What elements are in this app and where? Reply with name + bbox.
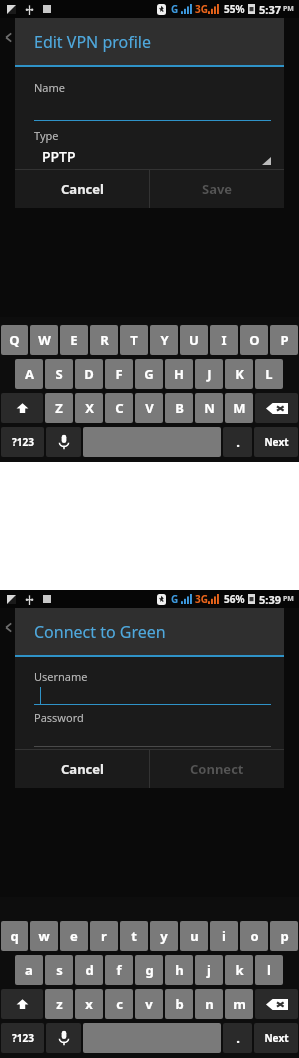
button[interactable]: Back	[1, 620, 16, 635]
button[interactable]: Voice input	[46, 1023, 81, 1053]
button[interactable]: u	[180, 921, 208, 951]
button[interactable]: L	[255, 359, 283, 389]
button[interactable]: v	[135, 989, 163, 1019]
button[interactable]: Save	[150, 170, 284, 208]
button[interactable]: l	[255, 955, 283, 985]
button[interactable]: d	[75, 955, 103, 985]
staticText: PPTP	[42, 147, 76, 166]
staticText: X	[85, 399, 94, 417]
button[interactable]: Next	[254, 427, 298, 457]
staticText: 5:37	[259, 2, 281, 17]
staticText: Next	[264, 435, 289, 449]
button[interactable]: w	[30, 921, 58, 951]
button[interactable]: W	[30, 325, 58, 355]
button[interactable]: A	[15, 359, 43, 389]
staticText: Z	[55, 399, 63, 417]
button[interactable]: Back	[1, 30, 16, 45]
button[interactable]: n	[195, 989, 223, 1019]
button[interactable]: r	[90, 921, 118, 951]
staticText: i	[222, 927, 226, 945]
button[interactable]: Cancel	[15, 750, 149, 788]
button[interactable]: k	[225, 955, 253, 985]
button[interactable]: c	[105, 989, 133, 1019]
staticText: M	[233, 399, 246, 417]
staticText: C	[115, 399, 124, 417]
button[interactable]: Delete	[255, 393, 298, 423]
button[interactable]: Voice input	[46, 427, 81, 457]
button[interactable]: ?123	[1, 1023, 44, 1053]
button[interactable]: x	[75, 989, 103, 1019]
button[interactable]: Shift	[1, 393, 43, 423]
button[interactable]: D	[75, 359, 103, 389]
button[interactable]: J	[195, 359, 223, 389]
button[interactable]: F	[105, 359, 133, 389]
button[interactable]: g	[135, 955, 163, 985]
button[interactable]: N	[195, 393, 223, 423]
staticText: B	[175, 399, 184, 417]
button[interactable]: T	[120, 325, 148, 355]
button[interactable]: B	[165, 393, 193, 423]
button[interactable]: ?123	[1, 427, 44, 457]
button[interactable]: G	[135, 359, 163, 389]
staticText: Name	[34, 80, 66, 95]
button[interactable]: Y	[150, 325, 178, 355]
staticText: h	[175, 961, 184, 979]
button[interactable]: S	[45, 359, 73, 389]
button[interactable]: p	[270, 921, 298, 951]
staticText: P	[280, 331, 289, 349]
staticText: W	[38, 331, 51, 349]
button[interactable]: y	[150, 921, 178, 951]
button[interactable]: z	[45, 989, 73, 1019]
staticText: y	[160, 927, 168, 945]
button[interactable]: P	[270, 325, 298, 355]
button[interactable]: I	[210, 325, 238, 355]
button[interactable]: .	[223, 427, 252, 457]
button[interactable]: M	[225, 393, 253, 423]
button[interactable]: Delete	[255, 989, 298, 1019]
button[interactable]: t	[120, 921, 148, 951]
button[interactable]: Cancel	[15, 170, 149, 208]
button[interactable]: H	[165, 359, 193, 389]
button[interactable]: V	[135, 393, 163, 423]
button[interactable]: C	[105, 393, 133, 423]
button[interactable]: R	[90, 325, 118, 355]
button[interactable]: X	[75, 393, 103, 423]
button[interactable]: .	[223, 1023, 252, 1053]
staticText: V	[145, 399, 154, 417]
button[interactable]: o	[240, 921, 268, 951]
staticText: Cancel	[61, 760, 104, 778]
button[interactable]: b	[165, 989, 193, 1019]
button[interactable]: Next	[254, 1023, 298, 1053]
button[interactable]: O	[240, 325, 268, 355]
button[interactable]: a	[15, 955, 43, 985]
button[interactable]: q	[1, 921, 28, 951]
staticText: G	[171, 2, 179, 16]
staticText: N	[204, 399, 215, 417]
button[interactable]: Q	[1, 325, 28, 355]
staticText: t	[131, 927, 137, 945]
staticText: e	[70, 927, 78, 945]
button[interactable]: U	[180, 325, 208, 355]
button[interactable]: j	[195, 955, 223, 985]
button[interactable]: Z	[45, 393, 73, 423]
button[interactable]: E	[60, 325, 88, 355]
button[interactable]: K	[225, 359, 253, 389]
staticText: Y	[160, 331, 169, 349]
button[interactable]: s	[45, 955, 73, 985]
staticText: j	[207, 961, 211, 979]
staticText: Edit VPN profile	[34, 31, 151, 53]
staticText: PM	[283, 4, 294, 14]
staticText: l	[267, 961, 271, 979]
staticText: d	[85, 961, 94, 979]
button[interactable]: e	[60, 921, 88, 951]
button[interactable]: Shift	[1, 989, 43, 1019]
button[interactable]: f	[105, 955, 133, 985]
button[interactable]: m	[225, 989, 253, 1019]
staticText: 3G	[195, 592, 208, 606]
button[interactable]: PPTP	[34, 147, 271, 166]
button[interactable]: i	[210, 921, 238, 951]
button[interactable]: h	[165, 955, 193, 985]
button[interactable]: Connect	[150, 750, 284, 788]
